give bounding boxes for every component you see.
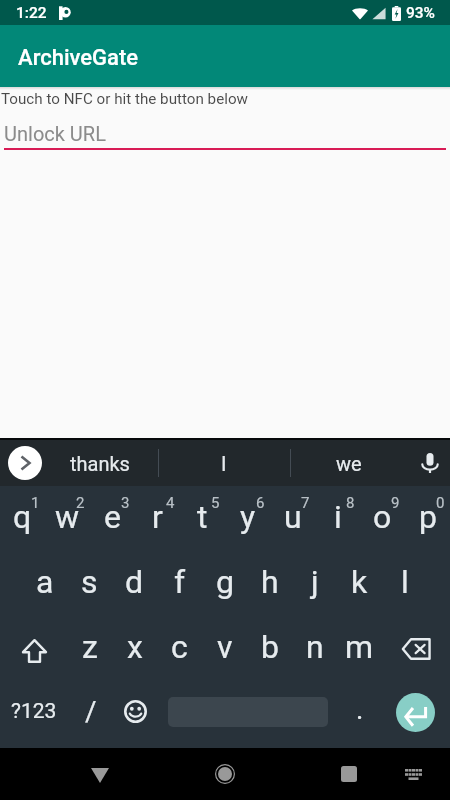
button[interactable]: thanks <box>46 440 154 486</box>
staticText: we <box>336 452 362 475</box>
staticText: Unlock URL <box>4 122 106 145</box>
staticText: 9 <box>391 494 400 512</box>
button[interactable]: Voice input <box>410 440 450 486</box>
staticText: Touch to NFC or hit the button below <box>1 90 248 108</box>
staticText: e <box>104 498 121 536</box>
staticText: . <box>356 693 364 726</box>
staticText: 4 <box>166 494 175 512</box>
staticText: m <box>345 628 374 666</box>
staticText: 2 <box>76 494 85 512</box>
button[interactable]: p <box>405 486 450 552</box>
button[interactable]: Emoji <box>113 680 158 744</box>
button[interactable]: / <box>68 680 113 744</box>
button[interactable]: c <box>157 618 202 684</box>
button[interactable]: j <box>292 552 337 618</box>
button[interactable]: I <box>158 440 290 486</box>
staticText: f <box>174 563 186 601</box>
staticText: h <box>261 563 279 601</box>
staticText: s <box>81 563 98 601</box>
staticText: 1 <box>31 494 40 512</box>
staticText: w <box>55 498 80 536</box>
button[interactable]: Back <box>70 748 130 800</box>
staticText: j <box>311 563 319 601</box>
button[interactable]: h <box>247 552 292 618</box>
button[interactable]: s <box>67 552 112 618</box>
button[interactable]: ?123 <box>0 680 68 744</box>
staticText: d <box>125 563 144 601</box>
button[interactable]: v <box>202 618 247 684</box>
button[interactable]: q <box>0 486 45 552</box>
button[interactable]: f <box>157 552 202 618</box>
staticText: I <box>221 452 227 475</box>
button[interactable]: Home <box>195 748 255 800</box>
button[interactable]: we <box>290 440 408 486</box>
staticText: 7 <box>301 494 310 512</box>
button[interactable]: e <box>90 486 135 552</box>
button[interactable]: Recent apps <box>319 748 379 800</box>
staticText: q <box>13 498 32 536</box>
staticText: n <box>306 628 324 666</box>
staticText: t <box>197 498 208 536</box>
button[interactable]: y <box>225 486 270 552</box>
button[interactable]: o <box>360 486 405 552</box>
staticText: / <box>85 695 97 728</box>
button[interactable]: i <box>315 486 360 552</box>
staticText: i <box>334 498 342 536</box>
staticText: o <box>373 498 392 536</box>
staticText: x <box>127 628 143 666</box>
button[interactable]: g <box>202 552 247 618</box>
button[interactable]: k <box>337 552 382 618</box>
button[interactable]: x <box>112 618 157 684</box>
button[interactable]: Change keyboard <box>387 748 439 800</box>
button[interactable]: u <box>270 486 315 552</box>
staticText: y <box>240 498 256 536</box>
staticText: 93% <box>406 4 436 22</box>
staticText: 8 <box>346 494 355 512</box>
button[interactable]: d <box>112 552 157 618</box>
staticText: 5 <box>211 494 220 512</box>
staticText: 0 <box>436 494 445 512</box>
button[interactable]: b <box>247 618 292 684</box>
staticText: b <box>261 628 279 666</box>
staticText: g <box>216 563 234 601</box>
staticText: 3 <box>121 494 130 512</box>
staticText: u <box>284 498 302 536</box>
staticText: l <box>401 563 409 601</box>
button[interactable]: n <box>292 618 337 684</box>
staticText: thanks <box>70 452 130 475</box>
staticText: r <box>152 498 163 536</box>
staticText: p <box>419 498 437 536</box>
staticText: z <box>82 628 98 666</box>
staticText: ?123 <box>11 699 57 724</box>
staticText: k <box>351 563 368 601</box>
button[interactable]: Backspace <box>382 618 450 684</box>
staticText: a <box>36 563 54 601</box>
button[interactable]: l <box>382 552 427 618</box>
staticText: 1:22 <box>16 4 47 22</box>
button[interactable]: w <box>45 486 90 552</box>
button[interactable]: t <box>180 486 225 552</box>
staticText: ArchiveGate <box>18 45 139 71</box>
button[interactable]: z <box>68 618 112 684</box>
button[interactable]: m <box>337 618 382 684</box>
staticText: v <box>217 628 233 666</box>
button[interactable]: Enter <box>396 693 435 732</box>
button[interactable]: a <box>23 552 67 618</box>
button[interactable]: Shift <box>0 618 68 684</box>
button[interactable]: r <box>135 486 180 552</box>
button[interactable]: . <box>337 680 382 744</box>
staticText: 6 <box>256 494 265 512</box>
button[interactable]: More suggestions <box>8 446 42 480</box>
staticText: c <box>171 628 188 666</box>
